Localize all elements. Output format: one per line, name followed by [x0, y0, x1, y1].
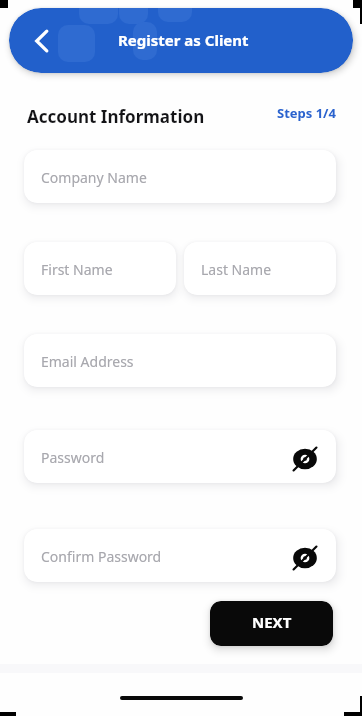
- button[interactable]: Company Name: [24, 150, 336, 203]
- button[interactable]: Confirm Password: [24, 529, 336, 582]
- staticText: Account Information: [27, 105, 205, 128]
- button[interactable]: Toggle password visibility: [291, 445, 319, 473]
- staticText: Steps 1/4: [277, 104, 336, 122]
- button[interactable]: Last Name: [184, 242, 336, 295]
- button[interactable]: Toggle password visibility: [291, 544, 319, 572]
- staticText: NEXT: [252, 612, 292, 632]
- staticText: Company Name: [41, 168, 147, 187]
- button[interactable]: Back: [21, 20, 63, 62]
- button[interactable]: NEXT: [210, 601, 333, 646]
- button[interactable]: Password: [24, 430, 336, 483]
- staticText: First Name: [41, 260, 113, 279]
- staticText: Email Address: [41, 352, 134, 371]
- staticText: Confirm Password: [41, 547, 162, 566]
- button[interactable]: First Name: [24, 242, 176, 295]
- staticText: Last Name: [201, 260, 272, 279]
- staticText: Password: [41, 448, 105, 467]
- button[interactable]: Email Address: [24, 334, 336, 387]
- staticText: Register as Client: [118, 30, 249, 50]
